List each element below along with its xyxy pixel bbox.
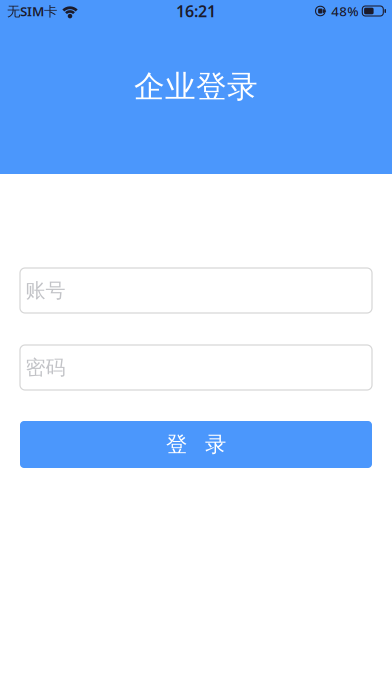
- staticText: 48%: [331, 2, 358, 20]
- button[interactable]: 登 录: [20, 421, 372, 468]
- button[interactable]: 密码: [20, 345, 372, 390]
- staticText: 企业登录: [134, 68, 258, 106]
- staticText: 账号: [25, 278, 65, 303]
- staticText: 无SIM卡: [7, 2, 57, 20]
- staticText: 16:21: [176, 0, 216, 22]
- staticText: 登 录: [166, 431, 226, 458]
- staticText: 密码: [25, 355, 65, 380]
- button[interactable]: 账号: [20, 268, 372, 313]
